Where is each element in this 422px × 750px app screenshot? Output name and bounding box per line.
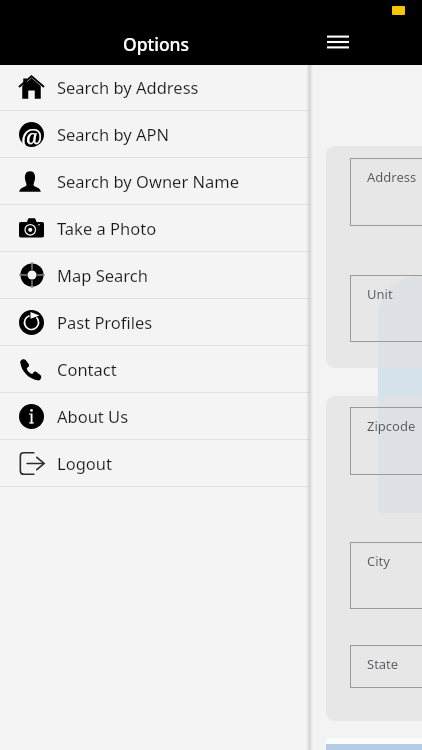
staticText: Take a Photo bbox=[57, 217, 157, 239]
staticText: Unit bbox=[367, 285, 393, 303]
button[interactable]: Map Search bbox=[0, 252, 309, 299]
staticText: Address bbox=[367, 168, 417, 186]
staticText: Past Profiles bbox=[57, 311, 153, 333]
button[interactable]: Contact bbox=[0, 346, 309, 393]
staticText: Options bbox=[96, 32, 216, 56]
button[interactable]: Take a Photo bbox=[0, 205, 309, 252]
staticText: Contact bbox=[57, 358, 117, 380]
button[interactable]: Logout bbox=[0, 440, 309, 487]
staticText: Search by Address bbox=[57, 76, 199, 98]
staticText: Logout bbox=[57, 452, 112, 474]
staticText: Search by Owner Name bbox=[57, 170, 240, 192]
staticText: About Us bbox=[57, 405, 129, 427]
button[interactable]: @ bbox=[0, 111, 309, 158]
button[interactable]: Past Profiles bbox=[0, 299, 309, 346]
button[interactable]: About Us bbox=[0, 393, 309, 440]
button[interactable]: Search by Address bbox=[0, 64, 309, 111]
button[interactable]: Open navigation menu bbox=[316, 20, 360, 64]
button[interactable]: Search by Owner Name bbox=[0, 158, 309, 205]
staticText: City bbox=[367, 552, 390, 570]
staticText: Zipcode bbox=[367, 417, 416, 435]
staticText: Search by APN bbox=[57, 123, 170, 145]
staticText: @ bbox=[21, 121, 43, 146]
staticText: State bbox=[367, 655, 399, 673]
staticText: Map Search bbox=[57, 264, 148, 286]
